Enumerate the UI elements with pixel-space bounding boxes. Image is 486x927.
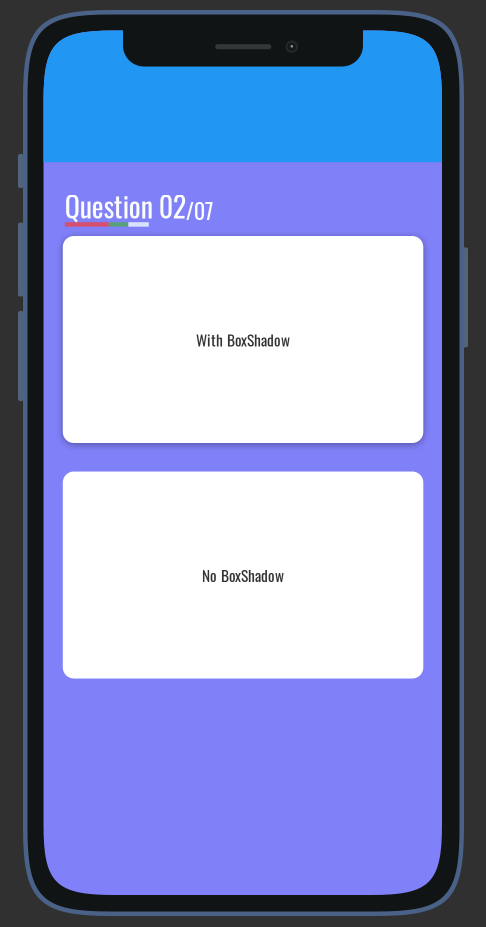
button[interactable]: No BoxShadow bbox=[63, 471, 423, 678]
staticText: With BoxShadow bbox=[196, 328, 290, 351]
staticText: /07 bbox=[186, 193, 214, 226]
staticText: No BoxShadow bbox=[202, 564, 284, 586]
staticText: Question 02 bbox=[65, 185, 186, 226]
button[interactable]: With BoxShadow bbox=[63, 236, 423, 443]
